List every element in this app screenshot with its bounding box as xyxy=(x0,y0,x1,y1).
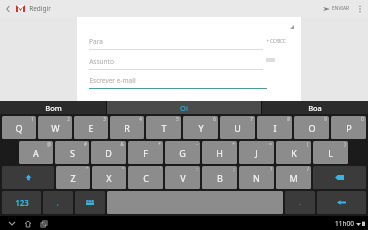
staticText: Boa xyxy=(308,103,322,113)
button[interactable]: R xyxy=(110,116,144,139)
staticText: 123 xyxy=(15,197,29,208)
staticText: D xyxy=(105,147,112,159)
staticText: 6 xyxy=(213,116,216,122)
staticText: B xyxy=(217,172,223,184)
staticText: Escrever e-mail xyxy=(89,76,136,85)
staticText: # xyxy=(84,141,87,147)
staticText: 3 xyxy=(103,116,106,122)
staticText: Assunto xyxy=(89,57,114,66)
staticText: * xyxy=(158,141,161,147)
staticText: ) xyxy=(344,141,346,147)
staticText: F xyxy=(143,147,148,159)
staticText: Bom xyxy=(45,103,62,113)
button[interactable]: S xyxy=(55,141,89,164)
staticText: & xyxy=(120,141,124,147)
staticText: / xyxy=(307,166,309,172)
staticText: C xyxy=(143,172,149,184)
staticText: E xyxy=(88,122,94,134)
staticText: ; xyxy=(233,166,235,172)
button[interactable]: More options xyxy=(353,2,366,15)
staticText: " xyxy=(86,166,88,172)
staticText: J xyxy=(255,147,258,159)
button[interactable]: E xyxy=(74,116,108,139)
staticText: 2 xyxy=(67,116,70,122)
button[interactable]: Y xyxy=(183,116,218,139)
staticText: 11h00 xyxy=(335,219,354,228)
button[interactable]: Backspace xyxy=(313,166,366,189)
staticText: Z xyxy=(70,172,76,184)
staticText: @ xyxy=(47,141,51,147)
button[interactable]: N xyxy=(239,166,274,189)
staticText: A xyxy=(33,147,39,159)
staticText: T xyxy=(161,122,167,134)
staticText: V xyxy=(180,172,186,184)
staticText: S xyxy=(70,147,75,159)
staticText: 4 xyxy=(139,116,142,122)
button[interactable]: W xyxy=(38,116,72,139)
staticText: L xyxy=(328,147,333,159)
staticText: Para xyxy=(89,37,103,46)
staticText: I xyxy=(273,122,277,134)
button[interactable]: Back xyxy=(2,3,14,15)
staticText: 9 xyxy=(324,116,327,122)
button[interactable]: O xyxy=(294,116,329,139)
button[interactable]: Bom xyxy=(0,101,106,114)
button[interactable]: P xyxy=(331,116,366,139)
staticText: . xyxy=(299,198,301,208)
button[interactable]: Recent apps xyxy=(37,217,50,230)
staticText: 8 xyxy=(287,116,290,122)
staticText: P xyxy=(346,122,352,134)
button[interactable]: Boa xyxy=(262,101,368,114)
button[interactable]: Shift xyxy=(2,166,54,189)
staticText: U xyxy=(234,122,241,134)
button[interactable]: G xyxy=(165,141,200,164)
staticText: 7 xyxy=(250,116,253,122)
button[interactable]: Q xyxy=(2,116,36,139)
button[interactable]: Oi xyxy=(107,101,261,114)
button[interactable]: A xyxy=(19,141,53,164)
button[interactable]: I xyxy=(257,116,292,139)
button[interactable]: Switch keyboard xyxy=(75,191,105,214)
staticText: Oi xyxy=(180,103,188,113)
button[interactable]: D xyxy=(91,141,126,164)
button[interactable]: J xyxy=(239,141,274,164)
staticText: 1 xyxy=(31,116,34,122)
button[interactable]: , xyxy=(43,191,73,214)
staticText: + xyxy=(232,141,235,147)
button[interactable]: B xyxy=(202,166,237,189)
button[interactable]: L xyxy=(313,141,348,164)
staticText: ( xyxy=(307,141,309,147)
button[interactable]: U xyxy=(220,116,255,139)
button[interactable]: . xyxy=(285,191,315,214)
staticText: Redigir xyxy=(29,4,51,13)
staticText: + CC/BCC xyxy=(266,38,286,44)
staticText: H xyxy=(216,147,223,159)
button[interactable]: 123 xyxy=(2,191,41,214)
button[interactable]: F xyxy=(128,141,163,164)
button[interactable]: + CC/BCC xyxy=(266,38,286,44)
staticText: K xyxy=(291,147,297,159)
staticText: 5 xyxy=(176,116,179,122)
staticText: : xyxy=(196,166,198,172)
button[interactable]: Enter xyxy=(317,191,366,214)
staticText: W xyxy=(51,122,60,134)
staticText: ! xyxy=(270,166,272,172)
button[interactable]: X xyxy=(92,166,126,189)
button[interactable]: Z xyxy=(56,166,90,189)
button[interactable]: T xyxy=(146,116,181,139)
button[interactable]: H xyxy=(202,141,237,164)
button[interactable]: V xyxy=(165,166,200,189)
button[interactable]: Back xyxy=(5,217,18,230)
staticText: Q xyxy=(15,122,23,134)
button[interactable]: Home xyxy=(21,217,34,230)
button[interactable]: ENVIAR xyxy=(323,0,349,17)
button[interactable]: C xyxy=(128,166,163,189)
staticText: ENVIAR xyxy=(332,5,349,12)
button[interactable]: M xyxy=(276,166,311,189)
staticText: ° xyxy=(122,166,124,172)
button[interactable]: K xyxy=(276,141,311,164)
staticText: = xyxy=(269,141,272,147)
staticText: O xyxy=(308,122,316,134)
